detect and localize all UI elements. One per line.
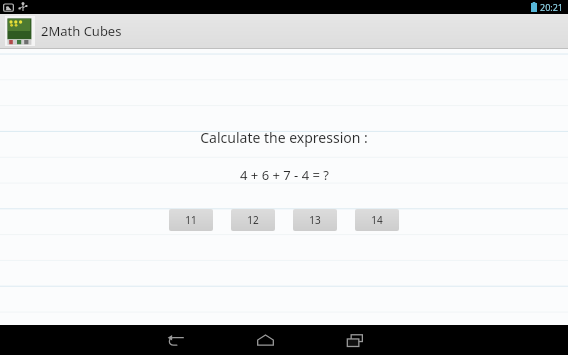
staticText: 20:21: [540, 1, 564, 13]
button[interactable]: Back: [151, 325, 199, 355]
staticText: 14: [371, 213, 383, 227]
button[interactable]: Recent apps: [331, 325, 379, 355]
staticText: 13: [309, 213, 321, 227]
button[interactable]: 14: [355, 209, 399, 231]
button[interactable]: 13: [293, 209, 337, 231]
button[interactable]: Home: [241, 325, 289, 355]
button[interactable]: 12: [231, 209, 275, 231]
button[interactable]: 11: [169, 209, 213, 231]
staticText: 11: [185, 213, 197, 227]
staticText: 4 + 6 + 7 - 4 = ?: [240, 166, 329, 184]
staticText: Calculate the expression :: [200, 128, 368, 147]
staticText: 12: [247, 213, 259, 227]
staticText: 2Math Cubes: [41, 22, 122, 40]
